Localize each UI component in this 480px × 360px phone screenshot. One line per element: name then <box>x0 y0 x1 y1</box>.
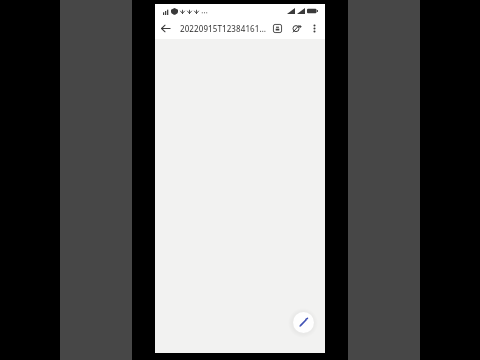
staticText: 20220915T12384161… <box>180 23 268 34</box>
button[interactable]: More options <box>306 20 323 37</box>
button[interactable]: Share <box>287 19 306 38</box>
button[interactable]: Edit <box>290 309 316 335</box>
button[interactable]: Document info <box>268 19 287 38</box>
button[interactable]: Navigate up <box>155 18 176 39</box>
